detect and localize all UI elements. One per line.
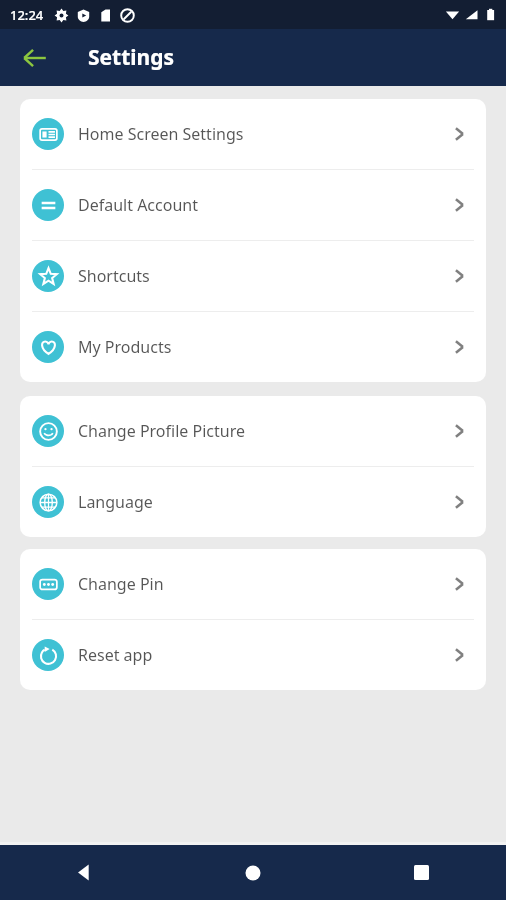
staticText: My Products bbox=[78, 336, 172, 358]
staticText: Change Pin bbox=[78, 573, 164, 595]
staticText: Home Screen Settings bbox=[78, 123, 244, 145]
button[interactable]: Home bbox=[168, 845, 337, 900]
button[interactable]: Shortcuts bbox=[20, 241, 486, 311]
staticText: Change Profile Picture bbox=[78, 420, 245, 442]
button[interactable]: Recent apps bbox=[337, 845, 506, 900]
button[interactable]: Default Account bbox=[20, 170, 486, 240]
staticText: Shortcuts bbox=[78, 265, 150, 287]
button[interactable]: Back bbox=[12, 35, 58, 81]
staticText: Reset app bbox=[78, 644, 153, 666]
button[interactable]: Language bbox=[20, 467, 486, 537]
button[interactable]: My Products bbox=[20, 312, 486, 382]
staticText: Language bbox=[78, 491, 153, 513]
staticText: 12:24 bbox=[10, 6, 44, 24]
staticText: Default Account bbox=[78, 194, 198, 216]
staticText: Settings bbox=[88, 43, 175, 72]
button[interactable]: Change Pin bbox=[20, 549, 486, 619]
button[interactable]: Change Profile Picture bbox=[20, 396, 486, 466]
button[interactable]: Back bbox=[0, 845, 168, 900]
button[interactable]: Reset app bbox=[20, 620, 486, 690]
button[interactable]: Home Screen Settings bbox=[20, 99, 486, 169]
